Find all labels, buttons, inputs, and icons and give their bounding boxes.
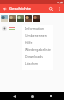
button[interactable] [9,15,16,22]
button[interactable]: Löschen [22,60,53,67]
staticText: Information [25,26,45,31]
button[interactable]: More options [55,4,64,13]
button[interactable]: Information [22,25,53,32]
staticText: Hilfe [25,40,33,45]
staticText: Geschichte [9,6,31,12]
button[interactable] [33,15,40,22]
button[interactable]: Umbenennen [22,32,53,39]
button[interactable]: Back [9,92,19,100]
button[interactable]: Wiedergabeliste [22,46,53,53]
button[interactable]: Hilfe [22,39,53,46]
staticText: Wiedergabeliste [25,47,51,52]
staticText: Downloads [25,54,43,59]
button[interactable] [17,15,24,22]
button[interactable]: Home [27,92,37,100]
button[interactable] [25,15,32,22]
button[interactable]: Downloads [22,53,53,60]
staticText: Umbenennen [25,33,47,38]
button[interactable]: Search [46,4,55,13]
staticText: Löschen [25,61,39,66]
button[interactable] [1,15,8,22]
button[interactable]: Back [0,4,9,13]
button[interactable]: Recents [46,92,56,100]
